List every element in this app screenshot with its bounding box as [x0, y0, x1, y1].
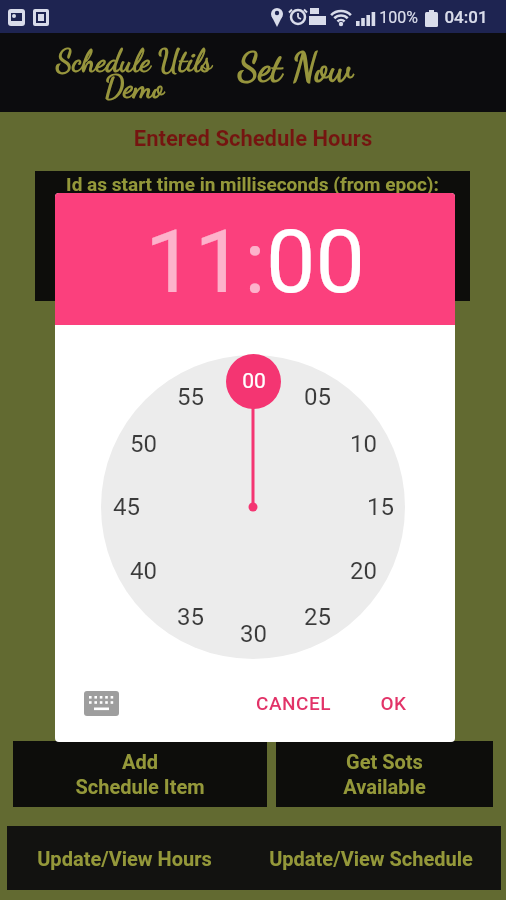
staticText: 20	[350, 557, 377, 585]
button[interactable]	[84, 691, 119, 716]
button[interactable]: OK	[338, 685, 448, 721]
staticText: 15	[367, 493, 394, 521]
staticText: CANCEL	[256, 692, 331, 714]
staticText: 04:01	[444, 7, 488, 27]
staticText: 10	[350, 430, 377, 458]
button[interactable]: 11	[145, 210, 244, 313]
staticText: Add Schedule Item	[75, 750, 205, 799]
staticText: 05	[304, 383, 331, 411]
staticText: 55	[177, 383, 204, 411]
button[interactable]: Add Schedule Item	[13, 741, 267, 807]
staticText: 100%	[379, 8, 418, 27]
staticText: Entered Schedule Hours	[0, 126, 506, 152]
staticText: 30	[240, 620, 267, 648]
staticText: Update/View Schedule	[269, 847, 473, 870]
staticText: 45	[113, 493, 140, 521]
button[interactable]: Schedule Utils Demo	[48, 43, 220, 105]
staticText: 25	[304, 603, 331, 631]
button[interactable]: Update/View Hours	[7, 826, 241, 890]
button[interactable]: CANCEL	[233, 685, 353, 721]
button[interactable]: 00	[266, 210, 365, 313]
staticText: Id as start time in milliseconds (from e…	[66, 173, 439, 195]
button[interactable]: Set Now	[238, 45, 353, 91]
staticText: 50	[130, 430, 157, 458]
staticText: Update/View Hours	[37, 847, 212, 870]
button[interactable]: 00	[226, 354, 281, 409]
button[interactable]: Get Sots Available	[276, 741, 493, 807]
staticText: :	[244, 210, 266, 313]
staticText: OK	[380, 692, 407, 714]
staticText: 35	[177, 603, 204, 631]
staticText: 00	[242, 369, 266, 394]
staticText: 40	[130, 557, 157, 585]
staticText: Get Sots Available	[343, 750, 426, 799]
button[interactable]: Update/View Schedule	[241, 826, 501, 890]
